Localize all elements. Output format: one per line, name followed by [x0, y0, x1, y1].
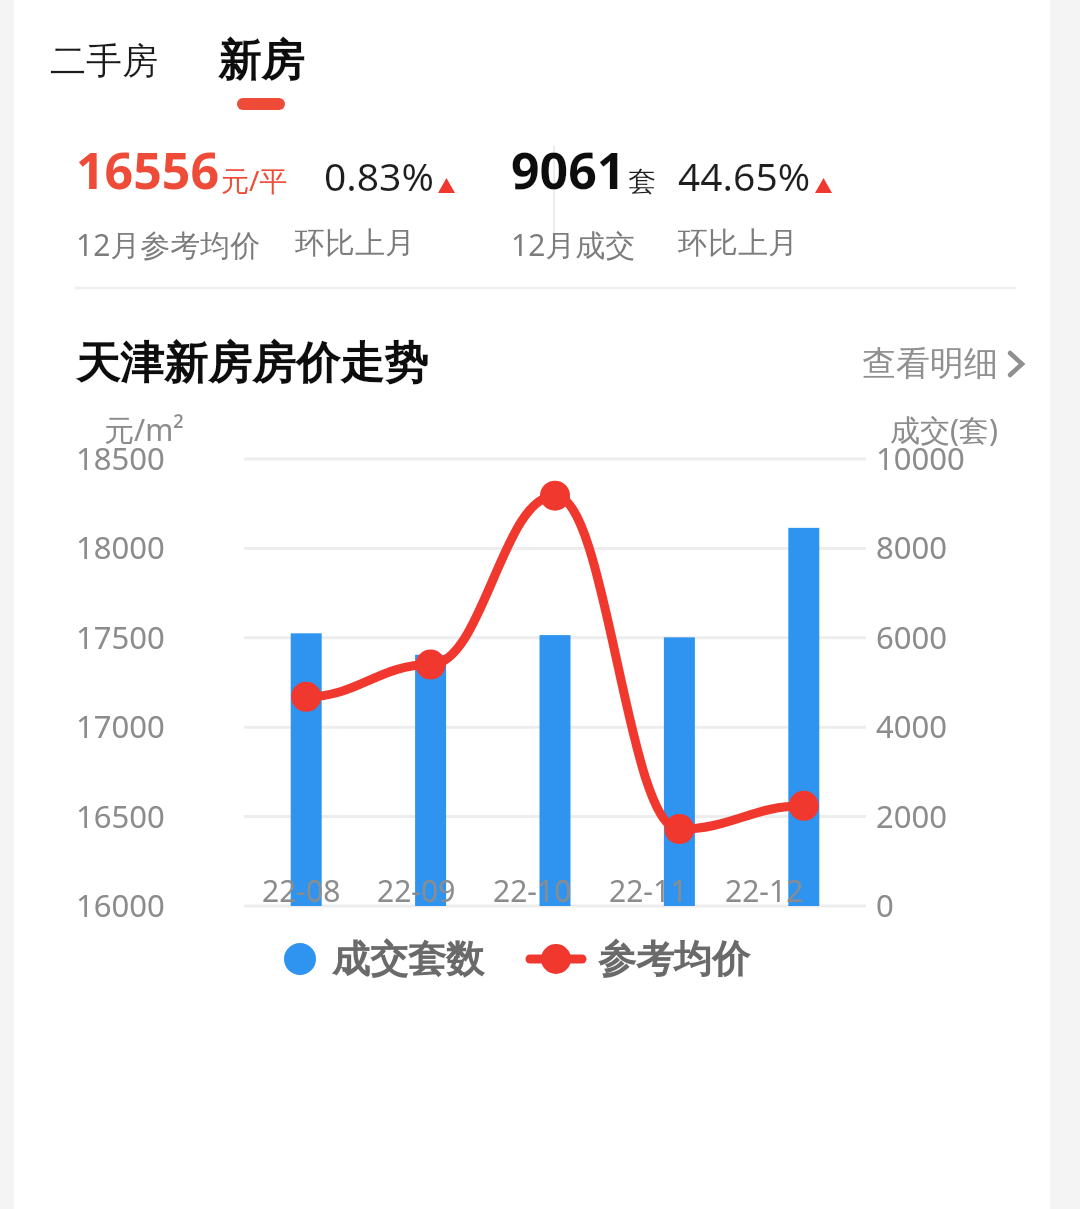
staticText: 环比上月: [295, 224, 415, 262]
button[interactable]: 二手房: [48, 34, 160, 87]
staticText: 10000: [876, 437, 965, 479]
staticText: 17500: [76, 616, 165, 658]
staticText: 22-10: [493, 870, 572, 911]
staticText: 4000: [876, 705, 947, 747]
staticText: 22-09: [377, 870, 456, 911]
staticText: 44.65%: [678, 149, 811, 202]
staticText: 8000: [876, 526, 947, 568]
staticText: 0: [876, 884, 894, 926]
staticText: 成交(套): [890, 409, 998, 450]
staticText: 17000: [76, 705, 165, 747]
staticText: 二手房: [50, 38, 158, 83]
button[interactable]: 新房: [218, 34, 304, 110]
staticText: 元/平: [221, 161, 288, 199]
button[interactable]: 参考均价: [530, 935, 750, 983]
staticText: 0.83%: [324, 149, 434, 202]
button[interactable]: 成交套数: [284, 935, 484, 983]
button[interactable]: 查看明细: [856, 336, 1030, 391]
staticText: 16500: [76, 795, 165, 837]
staticText: 天津新房房价走势: [76, 336, 428, 391]
staticText: 环比上月: [678, 224, 798, 262]
other: 查看明细: [1008, 350, 1024, 378]
staticText: 12月参考均价: [76, 224, 261, 265]
staticText: 成交套数: [332, 935, 484, 983]
staticText: 22-11: [609, 870, 688, 911]
staticText: 22-12: [725, 870, 804, 911]
staticText: 22-08: [262, 870, 341, 911]
staticText: 查看明细: [862, 342, 998, 385]
staticText: 套: [628, 164, 656, 199]
staticText: 参考均价: [598, 935, 750, 983]
staticText: 16000: [76, 884, 165, 926]
staticText: 元/m²: [104, 409, 184, 450]
staticText: 12月成交: [511, 224, 636, 265]
staticText: 6000: [876, 616, 947, 658]
staticText: 18500: [76, 437, 165, 479]
staticText: 16556: [76, 136, 219, 204]
staticText: 9061: [511, 136, 626, 204]
staticText: 2000: [876, 795, 947, 837]
staticText: 18000: [76, 526, 165, 568]
staticText: 新房: [218, 34, 304, 88]
